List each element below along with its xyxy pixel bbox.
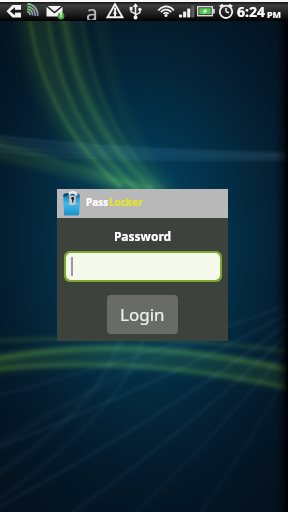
staticText: 6:24 xyxy=(237,2,265,21)
other: PassLocker xyxy=(62,191,81,217)
staticText: Pass xyxy=(86,195,109,209)
staticText: Login xyxy=(120,303,165,326)
staticText: a xyxy=(86,0,98,20)
staticText: Locker xyxy=(109,195,143,209)
staticText: Password xyxy=(57,228,228,244)
button[interactable] xyxy=(66,253,220,280)
button[interactable]: Login xyxy=(107,295,178,334)
staticText: PM xyxy=(267,8,282,20)
